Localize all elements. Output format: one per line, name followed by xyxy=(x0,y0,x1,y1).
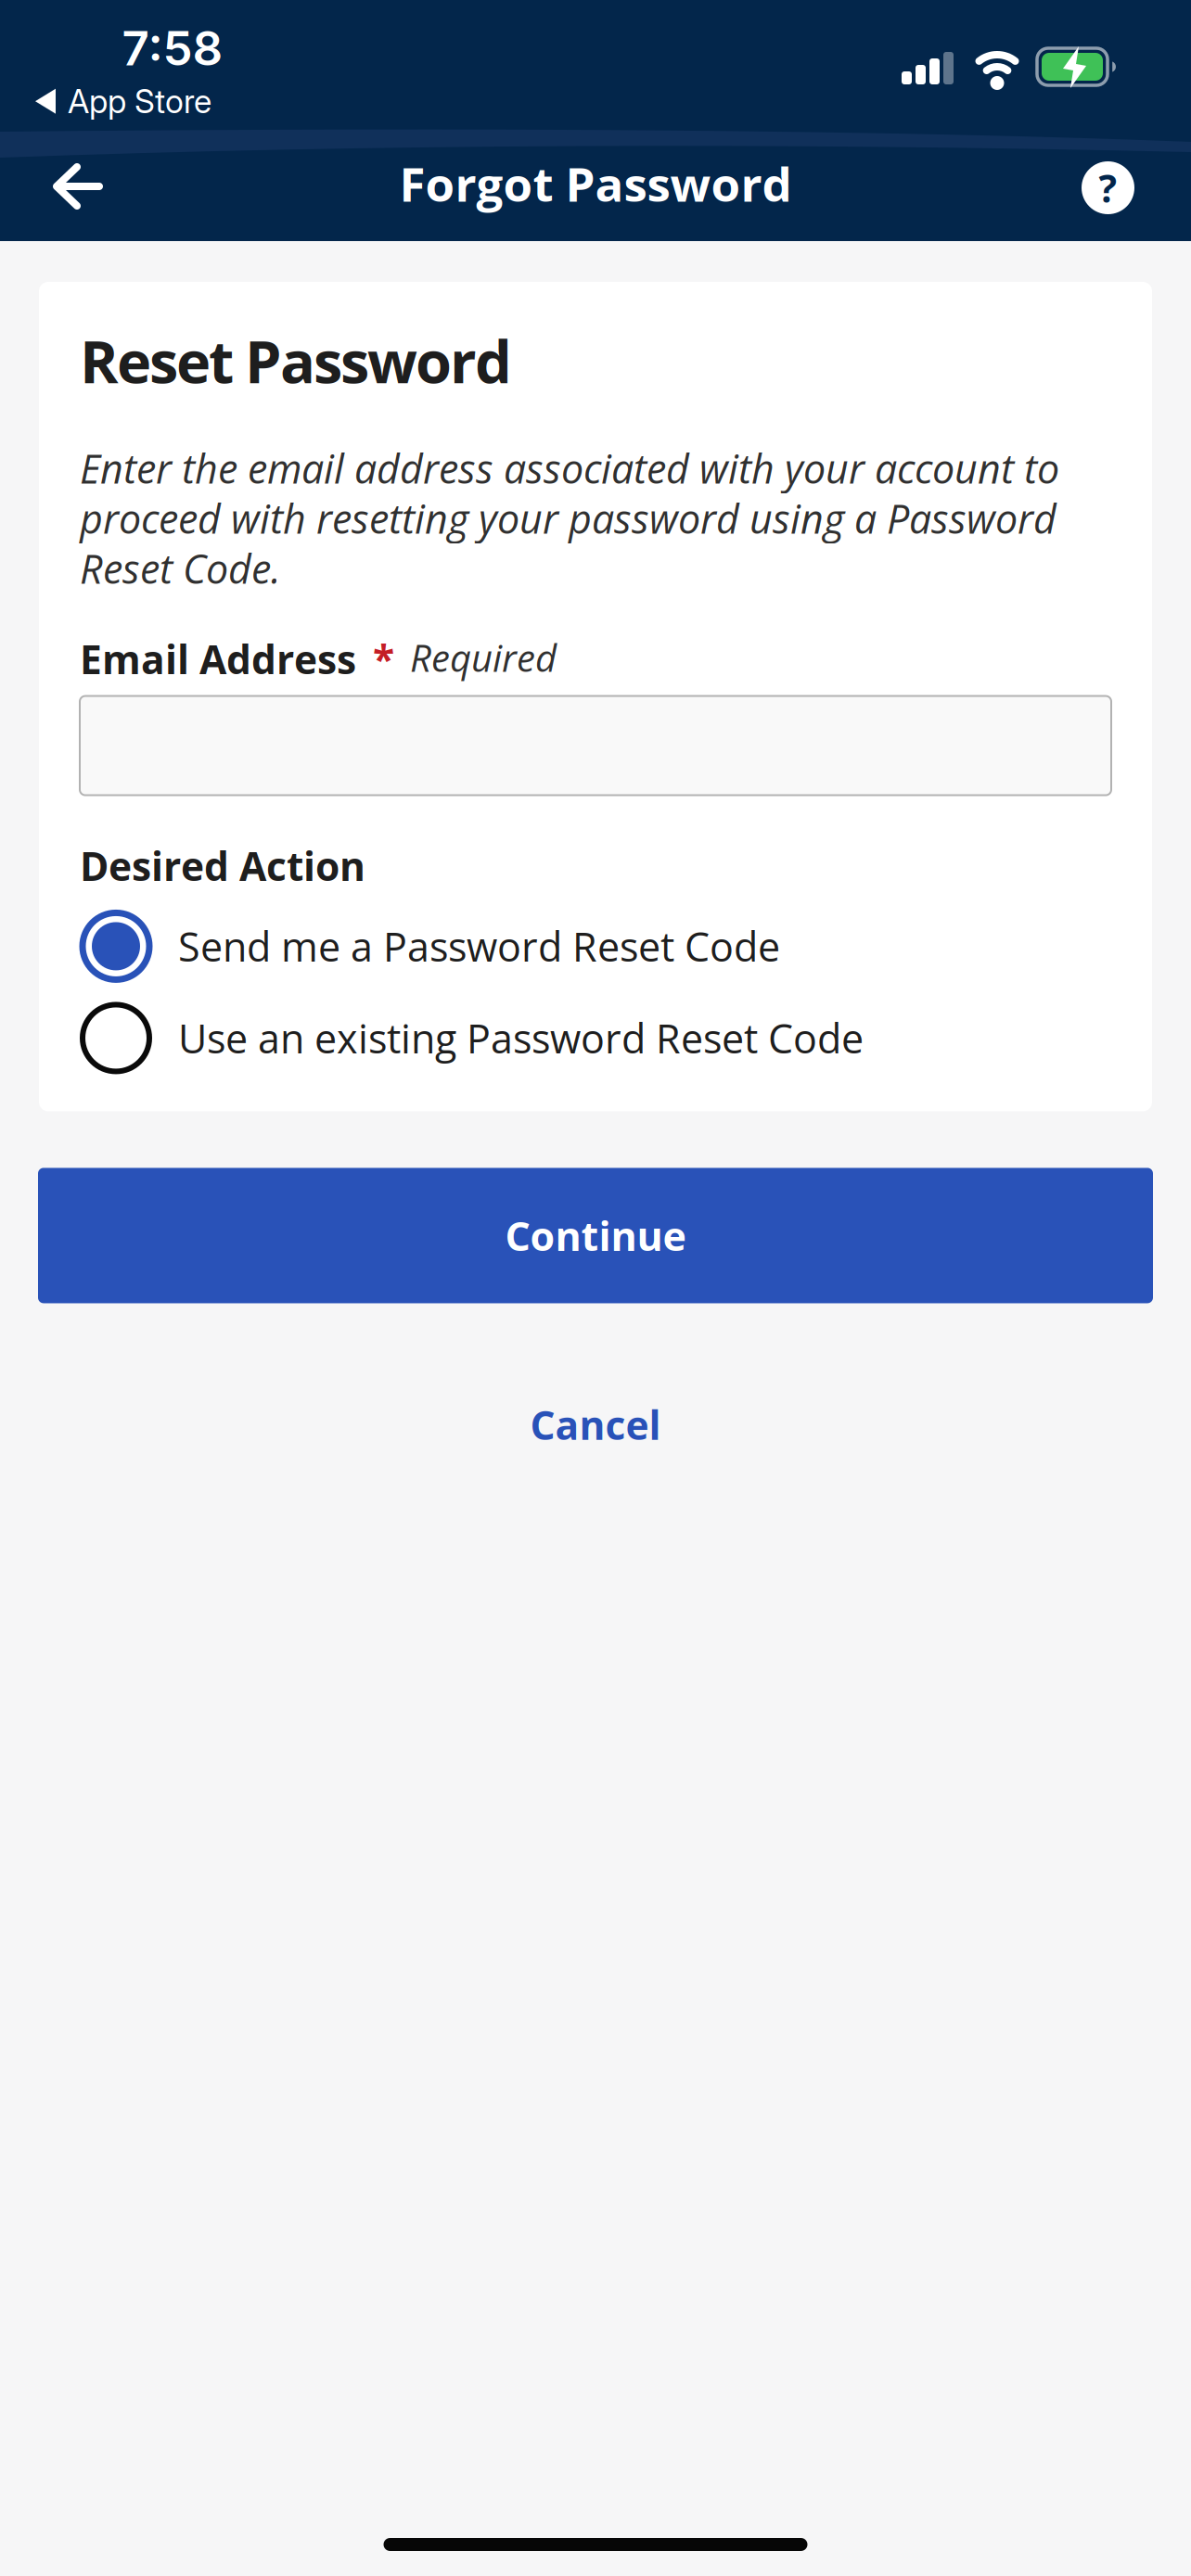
staticText: Cancel xyxy=(530,1398,661,1451)
staticText: Required xyxy=(410,632,557,683)
staticText: * xyxy=(373,632,394,686)
staticText: Use an existing Password Reset Code xyxy=(178,1011,864,1065)
staticText: Send me a Password Reset Code xyxy=(178,919,780,973)
staticText: Desired Action xyxy=(80,839,365,893)
button[interactable]: Help xyxy=(1069,148,1147,227)
staticText: Continue xyxy=(505,1208,686,1263)
staticText: Reset Password xyxy=(80,321,512,400)
staticText: ? xyxy=(1099,162,1117,214)
staticText: Forgot Password xyxy=(399,151,792,216)
button[interactable]: Continue xyxy=(38,1168,1153,1303)
staticText: Email Address xyxy=(80,632,356,686)
button[interactable]: Use an existing Password Reset Code xyxy=(80,982,864,1074)
staticText: 7:58 xyxy=(122,19,223,77)
staticText: Enter the email address associated with … xyxy=(80,443,1059,593)
staticText: App Store xyxy=(68,82,211,121)
button[interactable]: Back xyxy=(30,145,126,228)
button[interactable]: Send me a Password Reset Code xyxy=(80,892,780,982)
button[interactable]: Cancel xyxy=(493,1379,698,1470)
